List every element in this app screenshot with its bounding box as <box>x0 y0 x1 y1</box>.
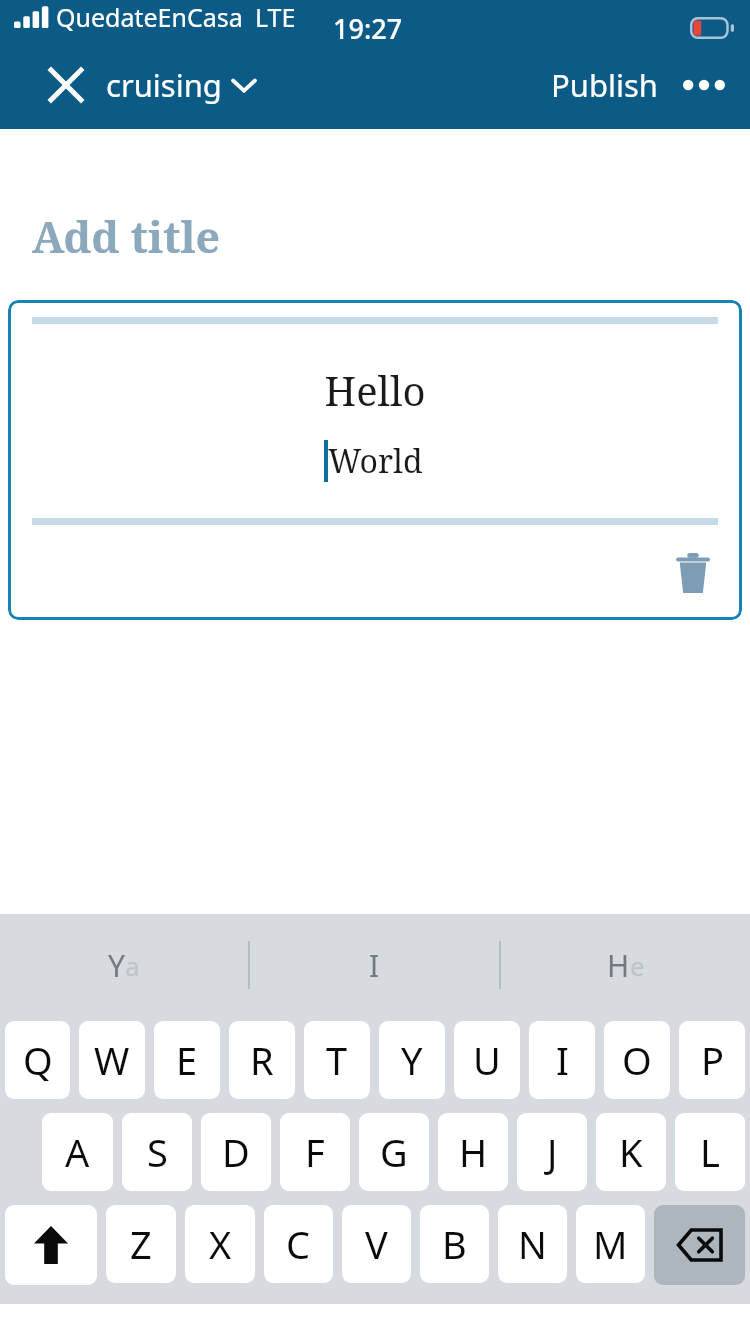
button[interactable]: M <box>576 1205 645 1283</box>
button[interactable]: Z <box>106 1205 176 1283</box>
staticText: H <box>459 1126 488 1178</box>
staticText: Y <box>401 1034 423 1086</box>
staticText: A <box>65 1126 90 1178</box>
button[interactable]: U <box>454 1021 520 1099</box>
staticText: Q <box>23 1034 53 1086</box>
button[interactable]: V <box>342 1205 411 1283</box>
staticText: G <box>380 1126 408 1178</box>
staticText: e <box>630 948 645 983</box>
staticText: Hello <box>8 363 742 417</box>
button[interactable]: X <box>185 1205 255 1283</box>
staticText: F <box>305 1126 325 1178</box>
button[interactable]: C <box>264 1205 333 1283</box>
button[interactable]: B <box>420 1205 489 1283</box>
staticText: D <box>222 1126 250 1178</box>
staticText: Y <box>108 945 125 986</box>
staticText: L <box>700 1126 720 1178</box>
staticText: N <box>518 1218 547 1270</box>
button[interactable]: H <box>438 1113 508 1191</box>
staticText: 19:27 <box>333 10 403 47</box>
staticText: I <box>369 945 380 986</box>
staticText: H <box>607 945 630 986</box>
button[interactable]: G <box>359 1113 429 1191</box>
button[interactable]: J <box>517 1113 587 1191</box>
button[interactable]: D <box>201 1113 271 1191</box>
button[interactable]: L <box>675 1113 745 1191</box>
button[interactable]: N <box>498 1205 567 1283</box>
staticText: K <box>619 1126 643 1178</box>
staticText: Add title <box>32 207 221 266</box>
button[interactable]: I <box>250 914 499 1016</box>
button[interactable]: Y <box>379 1021 445 1099</box>
staticText: LTE <box>255 0 296 34</box>
staticText: E <box>176 1034 198 1086</box>
staticText: Z <box>130 1218 152 1270</box>
staticText: W <box>94 1034 130 1086</box>
staticText: R <box>250 1034 274 1086</box>
button[interactable]: cruising <box>106 64 256 106</box>
button[interactable]: Backspace <box>654 1205 745 1285</box>
button[interactable]: I <box>529 1021 595 1099</box>
staticText: U <box>473 1034 501 1086</box>
staticText: V <box>365 1218 388 1270</box>
button[interactable]: Publish <box>545 56 664 114</box>
button[interactable]: K <box>596 1113 666 1191</box>
button[interactable]: Delete <box>666 546 720 600</box>
button[interactable]: Y <box>0 914 248 1016</box>
button[interactable]: W <box>79 1021 145 1099</box>
staticText: B <box>442 1218 467 1270</box>
staticText: J <box>547 1126 558 1178</box>
button[interactable]: T <box>304 1021 370 1099</box>
staticText: O <box>622 1034 652 1086</box>
staticText: P <box>701 1034 724 1086</box>
staticText: M <box>593 1218 628 1270</box>
button[interactable]: F <box>280 1113 350 1191</box>
button[interactable]: Q <box>5 1021 70 1099</box>
button[interactable]: More options <box>680 63 728 107</box>
staticText: World <box>328 439 423 483</box>
button[interactable]: S <box>122 1113 192 1191</box>
staticText: C <box>286 1218 311 1270</box>
staticText: I <box>556 1034 569 1086</box>
button[interactable]: H <box>501 914 750 1016</box>
staticText: QuedateEnCasa <box>56 0 243 34</box>
staticText: a <box>125 948 140 983</box>
button[interactable]: O <box>604 1021 670 1099</box>
staticText: Publish <box>551 64 658 106</box>
staticText: S <box>147 1126 168 1178</box>
button[interactable]: A <box>42 1113 113 1191</box>
button[interactable]: Hello <box>8 300 742 620</box>
button[interactable]: Close <box>40 59 92 111</box>
staticText: X <box>209 1218 232 1270</box>
button[interactable]: R <box>229 1021 295 1099</box>
button[interactable]: P <box>679 1021 745 1099</box>
staticText: cruising <box>106 64 222 106</box>
button[interactable]: E <box>154 1021 220 1099</box>
button[interactable]: Shift <box>5 1205 97 1285</box>
staticText: T <box>326 1034 348 1086</box>
